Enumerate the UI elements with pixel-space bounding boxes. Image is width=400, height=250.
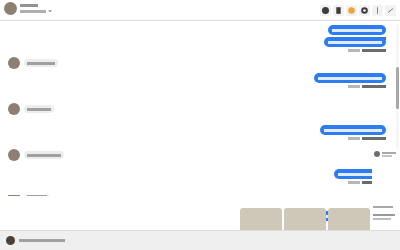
- button[interactable]: [284, 208, 326, 230]
- button[interactable]: [8, 57, 58, 69]
- button[interactable]: [8, 195, 50, 196]
- button[interactable]: [240, 208, 282, 230]
- button[interactable]: Pin: [333, 5, 344, 16]
- button[interactable]: [6, 236, 65, 245]
- button[interactable]: Expand: [385, 5, 396, 16]
- button[interactable]: Video call: [320, 5, 331, 16]
- button[interactable]: More options: [372, 5, 383, 16]
- button[interactable]: [328, 208, 370, 230]
- button[interactable]: [334, 169, 386, 179]
- button[interactable]: [328, 25, 386, 35]
- button[interactable]: Settings: [359, 5, 370, 16]
- button[interactable]: [8, 103, 54, 115]
- button[interactable]: [4, 2, 52, 15]
- button[interactable]: [314, 73, 386, 83]
- button[interactable]: [324, 37, 386, 47]
- button[interactable]: [320, 125, 386, 135]
- button[interactable]: [8, 149, 64, 161]
- button[interactable]: Highlight: [346, 5, 357, 16]
- button[interactable]: [302, 211, 386, 221]
- button[interactable]: [370, 196, 400, 230]
